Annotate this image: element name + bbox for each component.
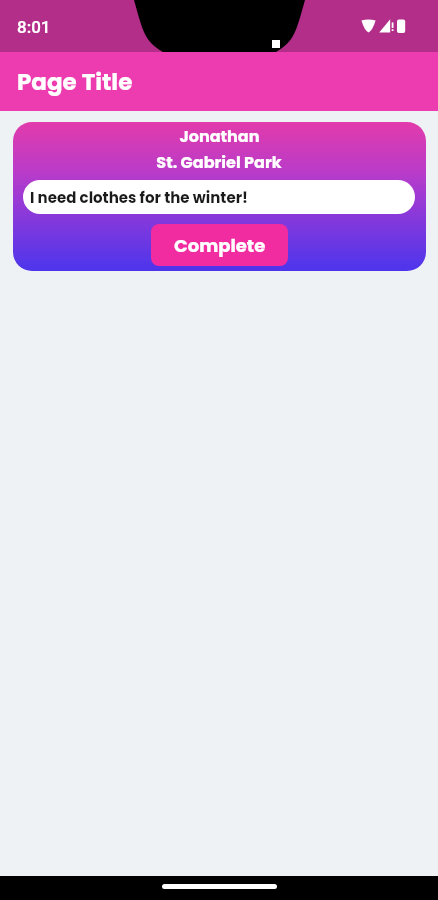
staticText: Jonathan: [179, 125, 260, 147]
staticText: Complete: [174, 233, 266, 258]
staticText: Page Title: [17, 66, 133, 98]
staticText: I need clothes for the winter!: [30, 187, 248, 208]
staticText: St. Gabriel Park: [156, 151, 282, 173]
staticText: 8:01: [17, 17, 51, 37]
button[interactable]: I need clothes for the winter!: [23, 180, 415, 214]
button[interactable]: Jonathan: [13, 122, 426, 271]
button[interactable]: Complete: [151, 224, 288, 266]
